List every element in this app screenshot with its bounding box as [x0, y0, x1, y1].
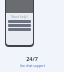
button[interactable] [8, 28, 31, 31]
staticText: live chat support [20, 64, 45, 68]
button[interactable] [8, 24, 31, 27]
staticText: 24/7 [26, 55, 38, 62]
staticText: Need help? [6, 15, 33, 19]
button[interactable] [8, 20, 31, 23]
